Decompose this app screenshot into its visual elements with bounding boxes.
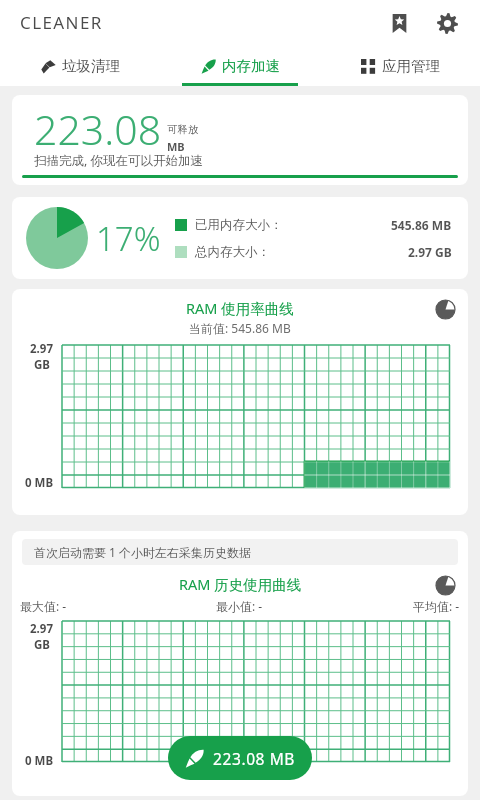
- staticText: 总内存大小：: [195, 244, 270, 260]
- staticText: GB: [34, 637, 50, 653]
- staticText: 223.08 MB: [213, 748, 296, 769]
- staticText: 平均值: -: [413, 598, 460, 614]
- staticText: 垃圾清理: [62, 57, 120, 75]
- staticText: 0 MB: [25, 475, 54, 491]
- button[interactable]: 内存加速: [160, 45, 320, 86]
- staticText: GB: [34, 357, 50, 373]
- button[interactable]: 应用管理: [320, 45, 480, 86]
- button[interactable]: Bookmark: [382, 6, 416, 40]
- staticText: CLEANER: [20, 11, 103, 34]
- staticText: 2.97 GB: [408, 244, 452, 260]
- staticText: 2.97: [30, 621, 53, 637]
- staticText: 扫描完成, 你现在可以开始加速: [34, 152, 204, 169]
- staticText: 内存加速: [222, 57, 280, 75]
- staticText: 可释放: [167, 123, 199, 136]
- button[interactable]: Chart options: [430, 294, 460, 324]
- staticText: RAM 历史使用曲线: [179, 574, 302, 594]
- staticText: 最大值: -: [20, 598, 67, 614]
- staticText: 2.97: [30, 341, 53, 357]
- staticText: 223.08: [34, 101, 162, 157]
- button[interactable]: History chart options: [430, 570, 460, 600]
- button[interactable]: Settings: [430, 6, 464, 40]
- button[interactable]: 223.08 MB: [168, 736, 312, 780]
- staticText: 545.86 MB: [391, 217, 452, 233]
- staticText: MB: [167, 139, 185, 154]
- staticText: 当前值: 545.86 MB: [189, 320, 291, 336]
- staticText: RAM 使用率曲线: [186, 298, 294, 318]
- staticText: 最小值: -: [216, 598, 263, 614]
- staticText: 已用内存大小：: [195, 217, 283, 233]
- staticText: 0 MB: [25, 753, 54, 769]
- staticText: 17%: [96, 216, 161, 261]
- staticText: 首次启动需要 1 个小时左右采集历史数据: [34, 544, 252, 560]
- staticText: 应用管理: [382, 57, 440, 75]
- button[interactable]: 垃圾清理: [0, 45, 160, 86]
